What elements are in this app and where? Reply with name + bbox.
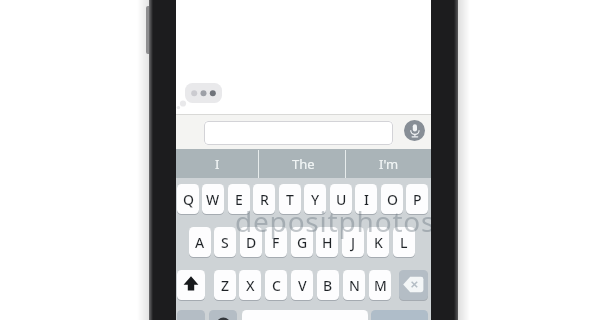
button[interactable]: S [214, 227, 236, 257]
button[interactable]: L [393, 227, 415, 257]
button[interactable]: I [355, 184, 377, 214]
button[interactable]: N [343, 270, 365, 300]
staticText: F [272, 233, 280, 252]
staticText: I'm [379, 155, 399, 173]
staticText: B [323, 276, 333, 295]
button[interactable]: E [228, 184, 250, 214]
staticText: Y [311, 190, 320, 209]
staticText: J [351, 233, 356, 252]
button[interactable]: I'm [346, 149, 431, 178]
staticText: depositphotos [235, 202, 436, 240]
staticText: T [286, 190, 294, 209]
button[interactable]: I [176, 149, 259, 178]
button[interactable]: W [202, 184, 224, 214]
button[interactable]: F [265, 227, 287, 257]
staticText: L [400, 233, 408, 252]
staticText: A [195, 233, 205, 252]
staticText: H [322, 233, 333, 252]
button[interactable]: M [369, 270, 391, 300]
staticText: I [364, 190, 369, 209]
button[interactable]: X [239, 270, 261, 300]
staticText: I [215, 155, 220, 173]
button[interactable]: U [330, 184, 352, 214]
button[interactable] [177, 270, 205, 300]
staticText: Q [183, 190, 194, 209]
staticText: M [374, 276, 387, 295]
button[interactable] [404, 120, 425, 141]
button[interactable]: Z [214, 270, 236, 300]
button[interactable]: A [189, 227, 211, 257]
staticText: The [292, 155, 315, 173]
staticText: K [374, 233, 383, 252]
button[interactable]: Q [177, 184, 199, 214]
staticText: W [206, 190, 220, 209]
staticText: S [221, 233, 229, 252]
button[interactable]: P [406, 184, 428, 214]
staticText: D [246, 233, 257, 252]
button[interactable] [204, 121, 393, 145]
button[interactable]: O [381, 184, 403, 214]
button[interactable]: T [279, 184, 301, 214]
button[interactable]: B [317, 270, 339, 300]
staticText: O [387, 190, 398, 209]
staticText: G [297, 233, 308, 252]
button[interactable] [242, 310, 368, 320]
button[interactable]: C [265, 270, 287, 300]
staticText: U [336, 190, 347, 209]
staticText: R [260, 190, 269, 209]
button[interactable]: K [367, 227, 389, 257]
staticText: C [272, 276, 281, 295]
button[interactable]: R [253, 184, 275, 214]
button[interactable]: Y [304, 184, 326, 214]
button[interactable] [371, 310, 428, 320]
staticText: X [246, 276, 255, 295]
button[interactable]: J [342, 227, 364, 257]
staticText: V [298, 276, 307, 295]
button[interactable] [399, 270, 428, 300]
button[interactable] [177, 310, 205, 320]
staticText: E [235, 190, 243, 209]
staticText: N [349, 276, 360, 295]
staticText: Z [221, 276, 230, 295]
button[interactable]: V [291, 270, 313, 300]
button[interactable]: G [291, 227, 313, 257]
button[interactable]: The [260, 149, 346, 178]
button[interactable]: H [316, 227, 338, 257]
staticText: P [413, 190, 422, 209]
button[interactable]: D [240, 227, 262, 257]
button[interactable] [209, 310, 237, 320]
